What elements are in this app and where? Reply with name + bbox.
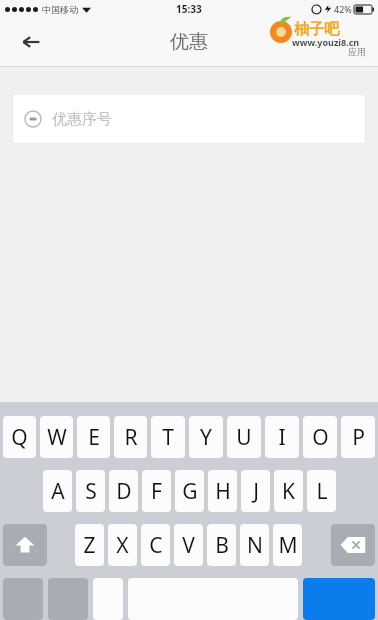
button[interactable]: Delete xyxy=(331,524,375,566)
staticText: U xyxy=(236,423,252,452)
staticText: D xyxy=(116,477,132,506)
staticText: 应用 xyxy=(348,46,366,57)
staticText: Y xyxy=(200,423,212,452)
button[interactable]: D xyxy=(109,470,138,512)
staticText: Q xyxy=(11,423,28,452)
staticText: C xyxy=(149,531,163,560)
staticText: 15:33 xyxy=(176,2,202,16)
button[interactable]: H xyxy=(208,470,237,512)
staticText: 优惠 xyxy=(170,30,208,54)
button[interactable]: M xyxy=(273,524,302,566)
button[interactable]: W xyxy=(40,416,73,458)
button[interactable]: U xyxy=(227,416,261,458)
button[interactable] xyxy=(303,578,375,620)
button[interactable]: G xyxy=(175,470,204,512)
staticText: P xyxy=(352,423,365,452)
staticText: V xyxy=(182,531,195,560)
staticText: X xyxy=(116,531,129,560)
button[interactable]: V xyxy=(174,524,203,566)
button[interactable]: A xyxy=(43,470,72,512)
staticText: M xyxy=(278,531,298,560)
staticText: 柚子吧 xyxy=(294,20,339,39)
staticText: 42% xyxy=(334,3,352,15)
button[interactable]: 优惠序号 xyxy=(12,94,366,144)
staticText: I xyxy=(278,423,286,452)
button[interactable]: Shift xyxy=(3,524,47,566)
staticText: 中国移动 xyxy=(42,4,78,15)
staticText: J xyxy=(253,477,259,506)
button[interactable]: R xyxy=(114,416,147,458)
staticText: O xyxy=(312,423,329,452)
button[interactable]: I xyxy=(265,416,299,458)
staticText: E xyxy=(88,423,100,452)
staticText: B xyxy=(215,531,229,560)
button[interactable]: N xyxy=(240,524,269,566)
staticText: H xyxy=(215,477,231,506)
button[interactable]: F xyxy=(142,470,171,512)
staticText: Z xyxy=(83,531,96,560)
button[interactable]: Y xyxy=(189,416,223,458)
staticText: R xyxy=(124,423,138,452)
staticText: L xyxy=(316,477,328,506)
button[interactable]: P xyxy=(341,416,375,458)
button[interactable]: E xyxy=(77,416,110,458)
button[interactable]: Back xyxy=(10,21,52,63)
staticText: G xyxy=(182,477,198,506)
staticText: W xyxy=(47,423,67,452)
staticText: F xyxy=(151,477,162,506)
button[interactable]: S xyxy=(76,470,105,512)
staticText: N xyxy=(247,531,263,560)
button[interactable]: C xyxy=(141,524,170,566)
staticText: K xyxy=(282,477,295,506)
staticText: S xyxy=(85,477,97,506)
button[interactable]: Language xyxy=(93,578,123,620)
button[interactable]: O xyxy=(303,416,337,458)
button[interactable]: J xyxy=(241,470,270,512)
button[interactable]: X xyxy=(108,524,137,566)
button[interactable]: T xyxy=(151,416,185,458)
staticText: T xyxy=(162,423,174,452)
button[interactable]: B xyxy=(207,524,236,566)
staticText: 优惠序号 xyxy=(52,110,112,129)
button[interactable]: Z xyxy=(75,524,104,566)
button[interactable]: L xyxy=(307,470,336,512)
button[interactable]: Q xyxy=(3,416,36,458)
button[interactable]: K xyxy=(274,470,303,512)
staticText: www.youzi8.cn xyxy=(292,36,360,48)
staticText: A xyxy=(51,477,65,506)
